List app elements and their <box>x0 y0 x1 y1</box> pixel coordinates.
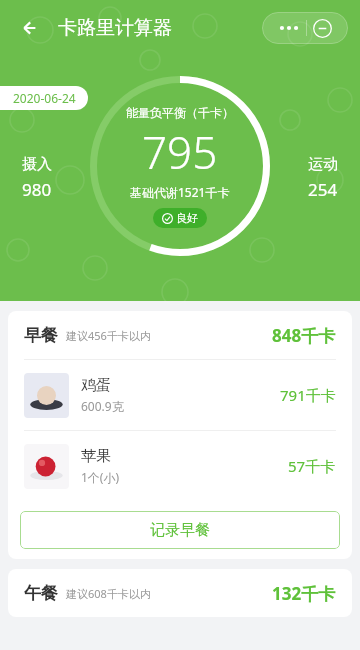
staticText: 848千卡 <box>272 324 336 347</box>
staticText: 600.9克 <box>81 398 124 414</box>
staticText: 苹果 <box>81 447 111 466</box>
staticText: 早餐 <box>24 325 58 346</box>
button[interactable]: Menu <box>262 12 348 44</box>
staticText: 基础代谢1521千卡 <box>130 184 230 200</box>
button[interactable]: 2020-06-24 <box>0 86 88 110</box>
staticText: 795 <box>142 122 218 182</box>
staticText: 良好 <box>176 211 198 225</box>
staticText: 132千卡 <box>272 582 336 605</box>
staticText: 980 <box>22 178 52 201</box>
staticText: 能量负平衡（千卡） <box>126 105 234 120</box>
button[interactable]: 鸡蛋 <box>8 360 352 430</box>
staticText: 午餐 <box>24 583 58 604</box>
staticText: 记录早餐 <box>150 521 210 540</box>
staticText: 791千卡 <box>280 385 336 405</box>
button[interactable]: 苹果 <box>8 431 352 501</box>
button[interactable]: 记录早餐 <box>20 511 340 549</box>
staticText: 2020-06-24 <box>13 90 76 106</box>
staticText: 建议456千卡以内 <box>66 328 151 343</box>
staticText: 摄入 <box>22 155 52 174</box>
staticText: 建议608千卡以内 <box>66 586 151 601</box>
staticText: 运动 <box>308 155 338 174</box>
button[interactable]: 午餐 <box>8 569 352 617</box>
staticText: 1个(小) <box>81 469 120 485</box>
staticText: 254 <box>308 178 338 201</box>
button[interactable]: Back <box>14 11 48 45</box>
staticText: 卡路里计算器 <box>58 16 172 40</box>
button[interactable]: 良好 <box>162 211 198 225</box>
staticText: 57千卡 <box>288 456 336 476</box>
staticText: 鸡蛋 <box>81 376 111 395</box>
button[interactable]: 早餐 <box>8 311 352 359</box>
